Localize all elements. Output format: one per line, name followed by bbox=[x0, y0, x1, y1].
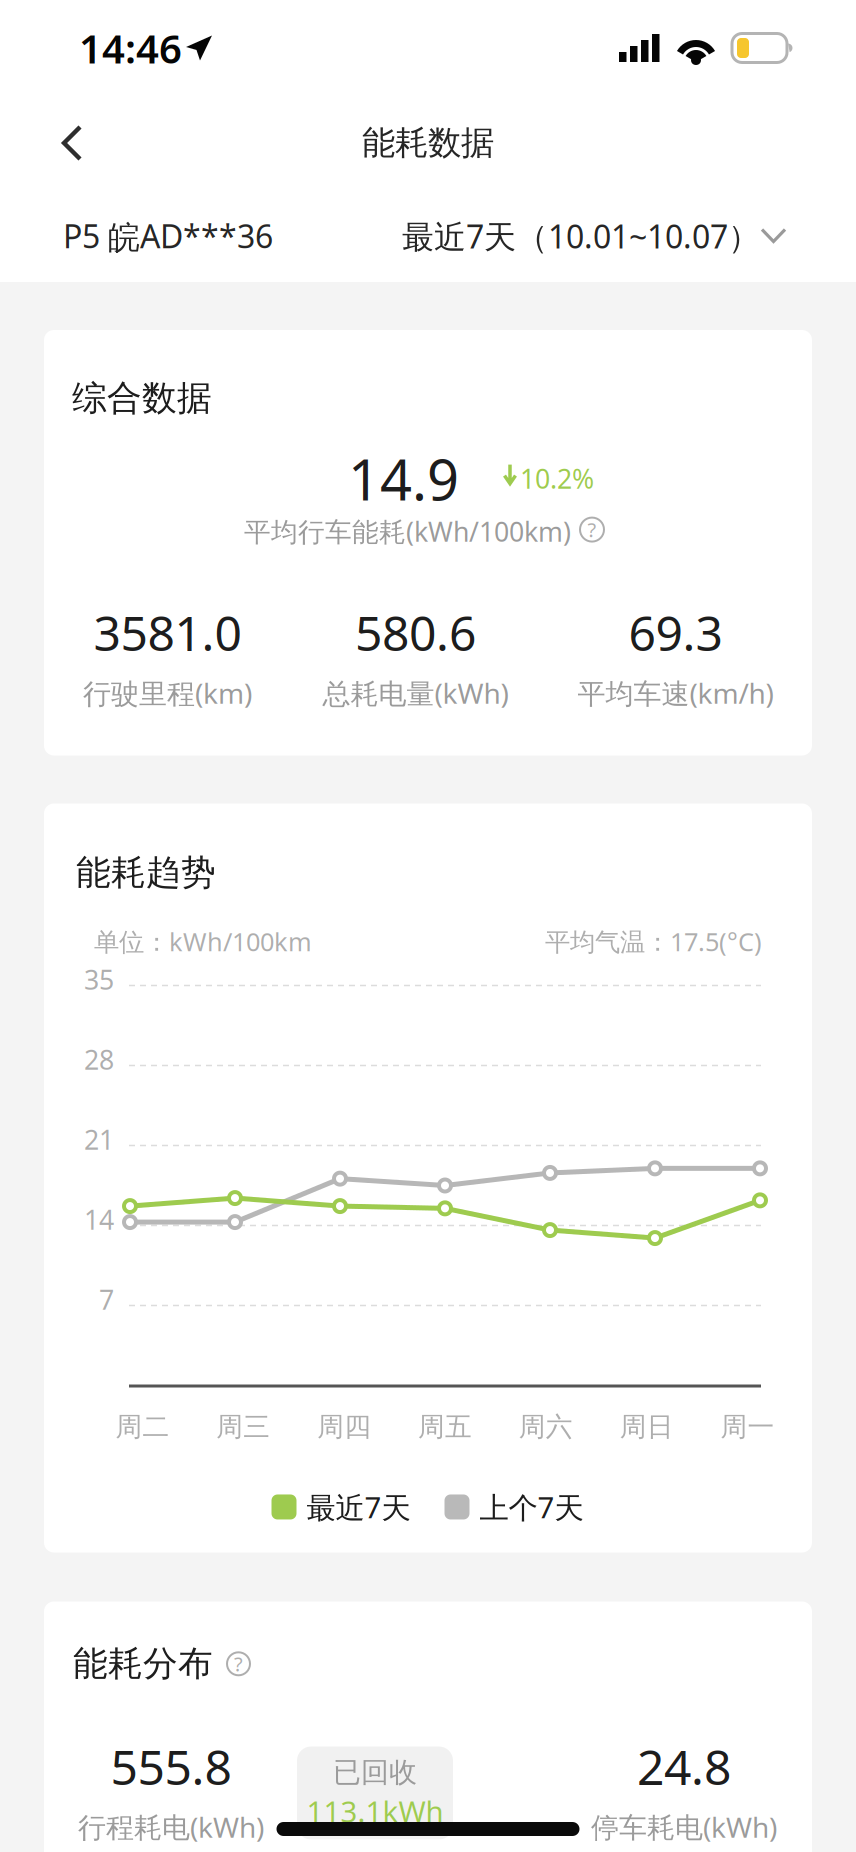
staticText: 21 bbox=[84, 1122, 114, 1157]
staticText: 14:46 bbox=[79, 21, 182, 74]
staticText: ? bbox=[587, 516, 596, 543]
staticText: 总耗电量(kWh) bbox=[322, 674, 508, 711]
staticText: 28 bbox=[84, 1042, 114, 1077]
staticText: 能耗趋势 bbox=[76, 851, 216, 894]
staticText: 14 bbox=[84, 1202, 114, 1237]
staticText: 555.8 bbox=[110, 1734, 231, 1798]
staticText: 周三 bbox=[216, 1410, 270, 1443]
staticText: ? bbox=[234, 1650, 243, 1677]
button[interactable]: Back bbox=[30, 103, 114, 183]
staticText: 行驶里程(km) bbox=[83, 674, 252, 711]
staticText: 上个7天 bbox=[479, 1487, 583, 1526]
staticText: 7 bbox=[99, 1282, 114, 1317]
staticText: 周一 bbox=[721, 1410, 775, 1443]
staticText: 3581.0 bbox=[93, 601, 241, 664]
staticText: 最近7天 bbox=[306, 1487, 410, 1526]
staticText: 能耗数据 bbox=[362, 122, 494, 163]
staticText: 综合数据 bbox=[72, 377, 212, 420]
staticText: 停车耗电(kWh) bbox=[591, 1808, 777, 1845]
staticText: 最近7天（10.01~10.07） bbox=[402, 215, 760, 257]
staticText: 24.8 bbox=[637, 1734, 731, 1798]
staticText: 69.3 bbox=[628, 601, 722, 664]
staticText: 113.1kWh bbox=[306, 1792, 443, 1831]
staticText: 平均车速(km/h) bbox=[577, 674, 773, 711]
staticText: 10.2% bbox=[520, 461, 594, 496]
staticText: 周五 bbox=[418, 1410, 472, 1443]
staticText: 能耗分布 bbox=[73, 1642, 213, 1685]
staticText: 已回收 bbox=[333, 1755, 417, 1790]
staticText: 周日 bbox=[620, 1410, 674, 1443]
staticText: 14.9 bbox=[348, 442, 459, 516]
staticText: 单位：kWh/100km bbox=[94, 924, 312, 958]
staticText: 周二 bbox=[115, 1410, 169, 1443]
staticText: 580.6 bbox=[355, 601, 476, 664]
staticText: 35 bbox=[84, 962, 114, 997]
staticText: 平均行车能耗(kWh/100km) bbox=[244, 514, 571, 549]
staticText: 行程耗电(kWh) bbox=[78, 1808, 264, 1845]
staticText: 周四 bbox=[317, 1410, 371, 1443]
button[interactable]: 最近7天（10.01~10.07） bbox=[402, 215, 787, 257]
staticText: 周六 bbox=[519, 1410, 573, 1443]
staticText: P5 皖AD***36 bbox=[63, 215, 273, 257]
staticText: 平均气温：17.5(°C) bbox=[545, 924, 762, 958]
